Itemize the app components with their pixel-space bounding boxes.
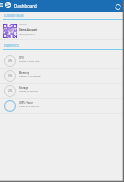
staticText: 2% <box>8 89 13 93</box>
staticText: LEOnet <box>19 23 27 26</box>
staticText: demo@email.tv <box>19 33 36 36</box>
staticText: Demo-Account <box>19 28 38 31</box>
button[interactable]: Refresh <box>112 1 123 12</box>
staticText: Shared, 11.46 GB total <box>19 75 41 78</box>
button[interactable]: IOPS / hour <box>0 98 124 113</box>
staticText: CPU <box>19 56 24 59</box>
staticText: STATISTICS <box>4 44 19 48</box>
staticText: 4% <box>8 59 13 63</box>
button[interactable]: LEOnet <box>0 20 124 39</box>
staticText: Memory <box>19 71 30 74</box>
staticText: LOGGED IN AS <box>4 14 24 18</box>
staticText: Storage <box>19 86 29 89</box>
staticText: Shared, 40 GB total <box>19 90 38 93</box>
button[interactable]: Open navigation menu <box>0 2 4 7</box>
button[interactable]: 2% <box>0 83 124 98</box>
button[interactable]: 4% <box>0 53 124 68</box>
button[interactable]: 5% <box>0 68 124 83</box>
staticText: Dashboard <box>14 3 37 9</box>
staticText: Shared, 4 Cores total <box>19 60 40 63</box>
staticText: 5% <box>8 74 13 78</box>
staticText: IOPS / hour <box>19 101 33 104</box>
staticText: 0 IOPS in, 0 IOPS out <box>19 105 40 108</box>
